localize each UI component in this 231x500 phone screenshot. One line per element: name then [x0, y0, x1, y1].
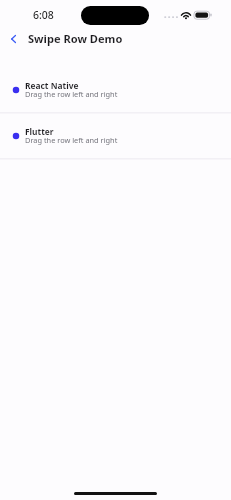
- button[interactable]: React Native: [0, 66, 231, 112]
- button[interactable]: Flutter: [0, 112, 231, 158]
- staticText: 6:08: [33, 8, 54, 22]
- staticText: React Native: [25, 80, 79, 91]
- staticText: Drag the row left and right: [25, 89, 118, 99]
- button[interactable]: Back: [2, 27, 26, 51]
- staticText: Flutter: [25, 126, 54, 137]
- staticText: Drag the row left and right: [25, 135, 118, 145]
- staticText: Swipe Row Demo: [28, 31, 123, 46]
